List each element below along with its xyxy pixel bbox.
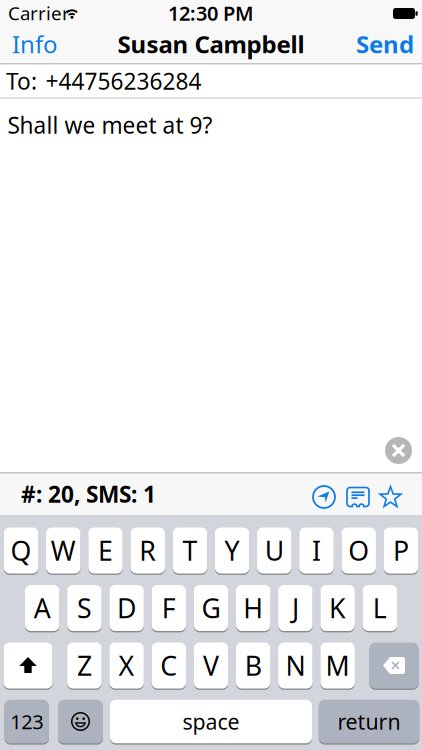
staticText: space xyxy=(182,707,239,736)
staticText: 123 xyxy=(10,708,43,735)
button[interactable]: N xyxy=(278,642,313,688)
staticText: +44756236284 xyxy=(45,66,201,96)
staticText: R xyxy=(139,533,156,568)
staticText: #: 20, SMS: 1 xyxy=(21,479,156,509)
staticText: Info xyxy=(12,28,58,60)
staticText: return xyxy=(337,707,400,736)
button[interactable]: Dismiss keyboard xyxy=(385,437,412,464)
staticText: B xyxy=(245,648,262,683)
staticText: F xyxy=(162,590,176,626)
button[interactable]: Q xyxy=(4,527,38,573)
button[interactable]: Send xyxy=(352,25,418,63)
button[interactable]: B xyxy=(236,642,270,688)
staticText: Carrier xyxy=(8,1,70,25)
staticText: V xyxy=(203,648,219,683)
staticText: M xyxy=(326,648,350,683)
button[interactable]: Z xyxy=(67,642,102,688)
button[interactable]: Y xyxy=(215,527,249,573)
staticText: O xyxy=(348,533,369,568)
button[interactable]: H xyxy=(236,585,270,631)
button[interactable]: R xyxy=(130,527,165,573)
staticText: Q xyxy=(11,533,32,568)
button[interactable]: Emoji xyxy=(58,700,103,743)
button[interactable]: Insert location xyxy=(309,482,339,512)
staticText: S xyxy=(77,590,92,626)
staticText: J xyxy=(292,590,299,626)
button[interactable]: G xyxy=(194,585,228,631)
staticText: U xyxy=(265,533,284,568)
staticText: I xyxy=(312,533,321,568)
staticText: E xyxy=(98,533,113,568)
button[interactable]: D xyxy=(109,585,144,631)
button[interactable]: F xyxy=(152,585,186,631)
staticText: X xyxy=(119,648,135,683)
button[interactable]: L xyxy=(363,585,397,631)
button[interactable]: E xyxy=(88,527,123,573)
button[interactable]: S xyxy=(67,585,102,631)
button[interactable]: Favorites xyxy=(375,482,405,512)
staticText: C xyxy=(160,648,177,683)
staticText: H xyxy=(243,590,263,626)
button[interactable]: X xyxy=(109,642,144,688)
button[interactable]: J xyxy=(278,585,313,631)
button[interactable]: K xyxy=(320,585,355,631)
button[interactable]: Shift xyxy=(3,642,52,688)
staticText: Y xyxy=(225,533,240,568)
button[interactable]: space xyxy=(110,700,312,743)
staticText: A xyxy=(34,590,51,626)
button[interactable]: U xyxy=(257,527,292,573)
button[interactable]: Message templates xyxy=(343,482,373,512)
staticText: L xyxy=(373,590,387,626)
staticText: Shall we meet at 9? xyxy=(7,110,212,140)
button[interactable]: P xyxy=(384,527,418,573)
button[interactable]: A xyxy=(25,585,59,631)
staticText: Send xyxy=(356,28,414,60)
staticText: T xyxy=(182,533,197,568)
staticText: N xyxy=(285,648,305,683)
button[interactable]: C xyxy=(152,642,186,688)
staticText: P xyxy=(393,533,409,568)
button[interactable]: I xyxy=(299,527,334,573)
staticText: D xyxy=(117,590,136,626)
staticText: 12:30 PM xyxy=(168,0,254,26)
staticText: K xyxy=(329,590,346,626)
staticText: W xyxy=(51,533,76,568)
button[interactable]: return xyxy=(319,700,419,743)
button[interactable]: O xyxy=(341,527,376,573)
button[interactable]: W xyxy=(46,527,81,573)
button[interactable]: V xyxy=(194,642,228,688)
button[interactable]: Info xyxy=(12,25,66,63)
staticText: To: xyxy=(6,66,37,96)
staticText: G xyxy=(201,590,220,626)
staticText: Susan Campbell xyxy=(117,28,304,60)
button[interactable]: M xyxy=(320,642,355,688)
button[interactable]: 123 xyxy=(4,700,49,743)
button[interactable]: Delete xyxy=(369,642,418,688)
button[interactable]: T xyxy=(173,527,207,573)
staticText: Z xyxy=(77,648,92,683)
